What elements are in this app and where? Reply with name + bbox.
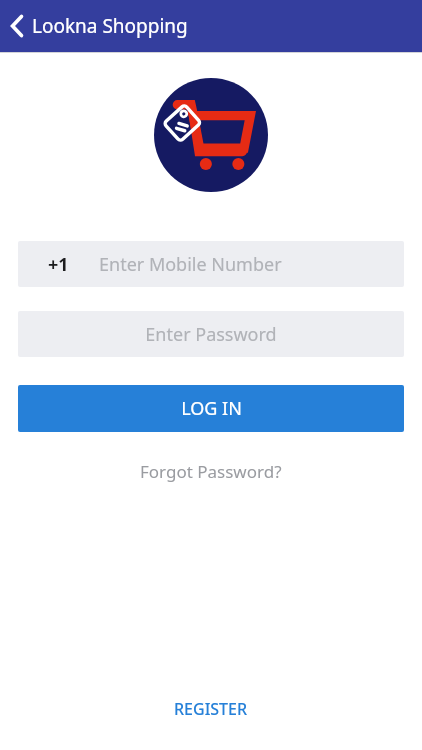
staticText: Enter Mobile Number (99, 252, 282, 277)
staticText: +1 (48, 252, 69, 277)
button[interactable]: Forgot Password? (126, 454, 296, 489)
button[interactable]: +1 (18, 241, 404, 287)
staticText: LOG IN (181, 396, 242, 421)
button[interactable]: REGISTER (156, 690, 266, 728)
button[interactable]: Back (0, 7, 202, 45)
staticText: Forgot Password? (140, 460, 282, 483)
staticText: Lookna Shopping (32, 13, 188, 39)
button[interactable]: Enter Password (18, 311, 404, 357)
other: Back (10, 14, 24, 38)
staticText: Enter Password (145, 322, 277, 347)
staticText: REGISTER (174, 698, 248, 720)
button[interactable]: LOG IN (18, 385, 404, 432)
